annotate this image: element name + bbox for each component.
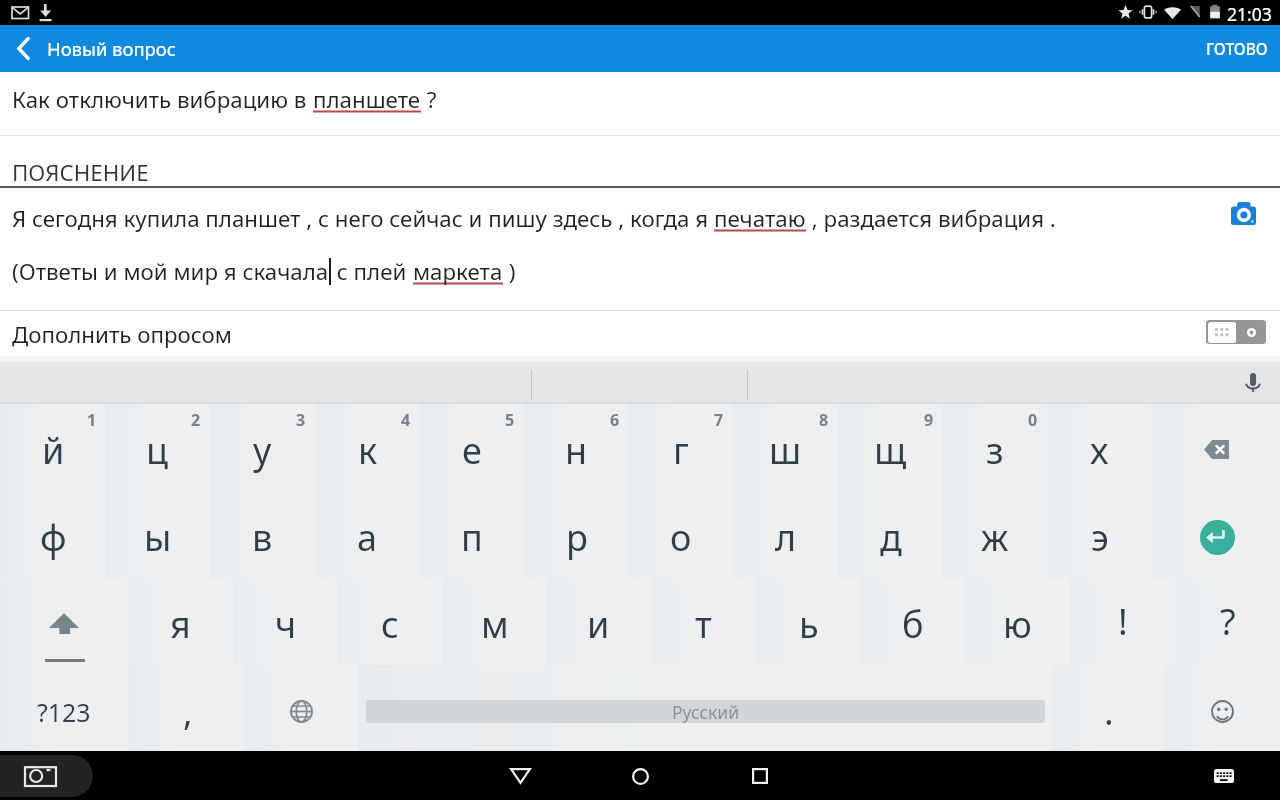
staticText: щ (874, 426, 907, 475)
staticText: й (42, 426, 65, 475)
staticText: ПОЯСНЕНИЕ (12, 157, 149, 187)
button[interactable]: н (524, 404, 629, 491)
button[interactable]: с (337, 578, 442, 665)
staticText: ю (1003, 600, 1032, 649)
button[interactable]: й (1, 404, 106, 491)
button[interactable]: Back (0, 25, 46, 72)
staticText: в (252, 513, 273, 562)
staticText: ц (146, 426, 169, 475)
button[interactable]: э (1047, 491, 1152, 578)
button[interactable]: ?123 (0, 665, 128, 751)
staticText: 3 (296, 409, 306, 431)
button[interactable]: , (128, 665, 244, 751)
staticText: 7 (714, 409, 724, 431)
button[interactable]: Keyboard (1205, 751, 1249, 800)
staticText: 4 (401, 409, 411, 431)
button[interactable]: х (1047, 404, 1152, 491)
button[interactable]: Emoji (1164, 665, 1280, 751)
staticText: ? (1220, 597, 1236, 646)
button[interactable]: ш (733, 404, 838, 491)
staticText: 9 (924, 409, 934, 431)
button[interactable]: я (128, 578, 233, 665)
button[interactable]: Backspace (1151, 404, 1280, 491)
staticText: Я сегодня купила планшет , с него сейчас… (12, 203, 714, 233)
button[interactable]: Enter (1151, 491, 1280, 578)
button[interactable]: к (315, 404, 420, 491)
staticText: Русский (672, 700, 740, 723)
staticText: . (1104, 687, 1114, 736)
button[interactable]: р (524, 491, 629, 578)
button[interactable]: у (210, 404, 315, 491)
button[interactable]: в (210, 491, 315, 578)
button[interactable]: л (733, 491, 838, 578)
button[interactable]: ! (1070, 578, 1175, 665)
staticText: с (381, 600, 399, 649)
staticText: е (462, 426, 482, 475)
button[interactable]: ы (105, 491, 210, 578)
button[interactable]: Voice input (1238, 366, 1268, 398)
staticText: , (183, 687, 193, 736)
button[interactable]: Recent apps (730, 751, 790, 800)
staticText: ГОТОВО (1206, 38, 1268, 59)
staticText: 6 (610, 409, 620, 431)
staticText: 0 (1028, 409, 1038, 431)
button[interactable]: Русский (358, 665, 1052, 751)
staticText: Дополнить опросом (12, 319, 232, 349)
button[interactable]: Shift (0, 578, 128, 665)
staticText: о (670, 513, 692, 562)
staticText: п (461, 513, 483, 562)
button[interactable]: и (546, 578, 651, 665)
staticText: маркета (413, 256, 503, 286)
button[interactable]: Screenshot (0, 755, 93, 797)
staticText: ш (769, 426, 802, 475)
staticText: з (986, 426, 1004, 475)
button[interactable]: . (1052, 665, 1164, 751)
staticText: ?123 (37, 695, 91, 729)
other: Shift (0, 578, 128, 665)
staticText: ч (275, 600, 297, 649)
button[interactable]: щ (838, 404, 943, 491)
button[interactable]: т (651, 578, 756, 665)
button[interactable]: ь (756, 578, 861, 665)
button[interactable]: г (628, 404, 733, 491)
staticText: печатаю (714, 203, 806, 233)
staticText: 5 (505, 409, 515, 431)
button[interactable]: ж (942, 491, 1047, 578)
button[interactable]: Back (490, 751, 550, 800)
other: Change language (244, 665, 358, 751)
other: Emoji (1164, 665, 1280, 751)
staticText: г (673, 426, 689, 475)
button[interactable]: ц (105, 404, 210, 491)
staticText: л (775, 513, 797, 562)
staticText: ы (144, 513, 172, 562)
button[interactable]: Attach photo (1221, 190, 1265, 232)
button[interactable]: о (628, 491, 733, 578)
button[interactable]: Дополнить опросом (0, 311, 1280, 356)
button[interactable]: Change input method (1206, 320, 1266, 344)
button[interactable]: а (315, 491, 420, 578)
staticText: б (902, 600, 924, 649)
button[interactable]: ? (1175, 578, 1280, 665)
button[interactable]: ф (1, 491, 106, 578)
button[interactable]: д (838, 491, 943, 578)
button[interactable]: е (419, 404, 524, 491)
button[interactable]: м (442, 578, 547, 665)
staticText: р (566, 513, 588, 562)
other: Backspace (1151, 404, 1280, 491)
button[interactable]: б (860, 578, 965, 665)
button[interactable]: Change language (244, 665, 358, 751)
staticText: м (481, 600, 509, 649)
button[interactable]: Home (610, 751, 670, 800)
button[interactable]: ГОТОВО (1189, 26, 1280, 71)
staticText: Новый вопрос (47, 36, 176, 61)
staticText: и (587, 600, 610, 649)
staticText: , раздается вибрация . (806, 203, 1056, 233)
staticText: 2 (191, 409, 201, 431)
button[interactable]: ю (965, 578, 1070, 665)
staticText: х (1090, 426, 1109, 475)
button[interactable]: п (419, 491, 524, 578)
staticText: к (358, 426, 378, 475)
staticText: н (565, 426, 588, 475)
button[interactable]: ч (233, 578, 338, 665)
button[interactable]: з (942, 404, 1047, 491)
